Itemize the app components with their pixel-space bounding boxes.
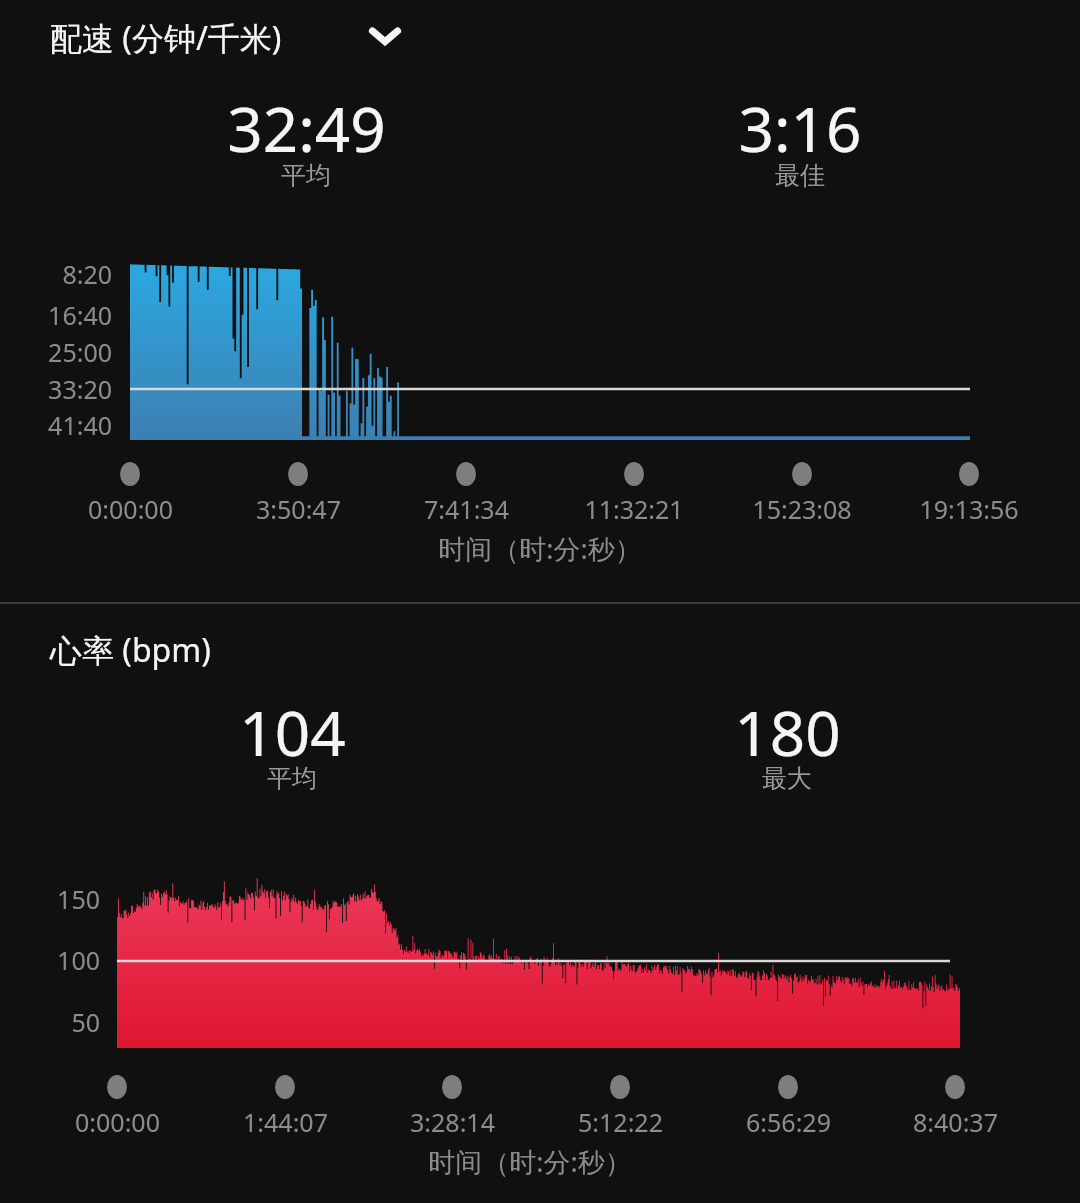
staticText: 19:13:56 [919, 492, 1019, 526]
staticText: 时间（时:分:秒） [438, 530, 642, 567]
staticText: 平均 [267, 763, 317, 794]
staticText: 33:20 [48, 372, 112, 406]
button[interactable]: 配速 (分钟/千米) [50, 16, 282, 60]
staticText: 时间（时:分:秒） [428, 1143, 632, 1180]
staticText: 0:00:00 [75, 1105, 160, 1139]
staticText: 8:40:37 [913, 1105, 998, 1139]
staticText: 3:50:47 [256, 492, 341, 526]
staticText: 104 [239, 690, 346, 774]
staticText: 6:56:29 [746, 1105, 831, 1139]
staticText: 150 [57, 882, 100, 916]
staticText: 16:40 [48, 298, 112, 332]
staticText: 50 [71, 1005, 100, 1039]
staticText: 1:44:07 [243, 1105, 328, 1139]
staticText: 5:12:22 [578, 1105, 663, 1139]
staticText: 100 [57, 943, 100, 977]
staticText: 15:23:08 [752, 492, 852, 526]
staticText: 最佳 [775, 160, 825, 191]
staticText: 心率 (bpm) [50, 628, 211, 672]
staticText: 0:00:00 [88, 492, 173, 526]
staticText: 7:41:34 [424, 492, 509, 526]
staticText: 41:40 [48, 408, 112, 442]
staticText: 配速 (分钟/千米) [50, 16, 282, 60]
staticText: 32:49 [227, 86, 386, 170]
staticText: 8:20 [62, 257, 112, 291]
button[interactable]: Change metric [362, 12, 408, 60]
staticText: 3:16 [738, 86, 862, 170]
staticText: 180 [734, 690, 841, 774]
staticText: 25:00 [48, 335, 112, 369]
button[interactable]: 心率 (bpm) [50, 628, 211, 672]
staticText: 平均 [281, 160, 331, 191]
staticText: 最大 [762, 763, 812, 794]
staticText: 3:28:14 [410, 1105, 495, 1139]
staticText: 11:32:21 [584, 492, 684, 526]
